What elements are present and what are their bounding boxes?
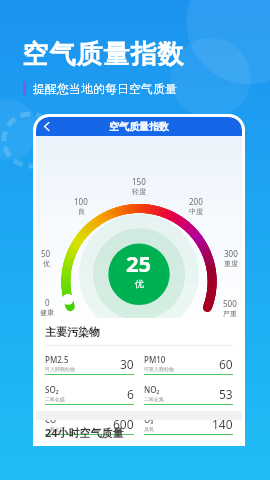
staticText: 重度 — [224, 259, 238, 268]
staticText: 150 — [132, 176, 146, 187]
staticText: PM10 — [144, 354, 166, 365]
staticText: 6 — [127, 386, 134, 402]
staticText: 可入肺颗粒物 — [45, 366, 75, 372]
staticText: 良 — [78, 207, 85, 216]
staticText: 60 — [219, 356, 233, 372]
staticText: 空气质量指数 — [109, 120, 169, 133]
staticText: 600 — [113, 416, 134, 432]
staticText: 一氧化碳 — [45, 426, 65, 432]
staticText: 健康 — [40, 308, 54, 317]
staticText: 30 — [120, 356, 134, 372]
staticText: 提醒您当地的每日空气质量 — [33, 81, 177, 96]
staticText: 25 — [126, 248, 152, 278]
staticText: SO₂ — [45, 384, 59, 395]
staticText: 轻度 — [132, 187, 146, 196]
staticText: 优 — [135, 278, 144, 289]
staticText: 二氧化硫 — [45, 396, 65, 402]
staticText: 二氧化氮 — [144, 396, 164, 402]
button[interactable]: NO₂ — [144, 384, 233, 405]
staticText: 可吸入颗粒物 — [144, 366, 174, 372]
staticText: 100 — [74, 196, 88, 207]
staticText: 空气质量指数 — [22, 38, 184, 71]
staticText: 主要污染物 — [45, 325, 100, 339]
button[interactable]: PM2.5 — [45, 354, 134, 375]
staticText: 严重 — [223, 309, 237, 318]
staticText: 140 — [212, 416, 233, 432]
button[interactable]: O₃ — [144, 414, 233, 435]
button[interactable]: Back — [36, 117, 55, 136]
staticText: 0 — [45, 297, 50, 308]
button[interactable]: PM10 — [144, 354, 233, 375]
staticText: 200 — [189, 196, 203, 207]
staticText: 优 — [43, 259, 50, 268]
staticText: 53 — [219, 386, 233, 402]
staticText: 24小时空气质量 — [45, 425, 124, 440]
staticText: 中度 — [189, 207, 203, 216]
button[interactable]: CO — [45, 414, 134, 435]
staticText: CO — [45, 414, 57, 425]
staticText: O₃ — [144, 414, 154, 425]
staticText: NO₂ — [144, 384, 160, 395]
button[interactable]: SO₂ — [45, 384, 134, 405]
staticText: 300 — [224, 248, 238, 259]
staticText: 臭氧 — [144, 426, 154, 432]
staticText: 50 — [41, 248, 51, 259]
staticText: 500 — [223, 298, 237, 309]
staticText: PM2.5 — [45, 354, 69, 365]
